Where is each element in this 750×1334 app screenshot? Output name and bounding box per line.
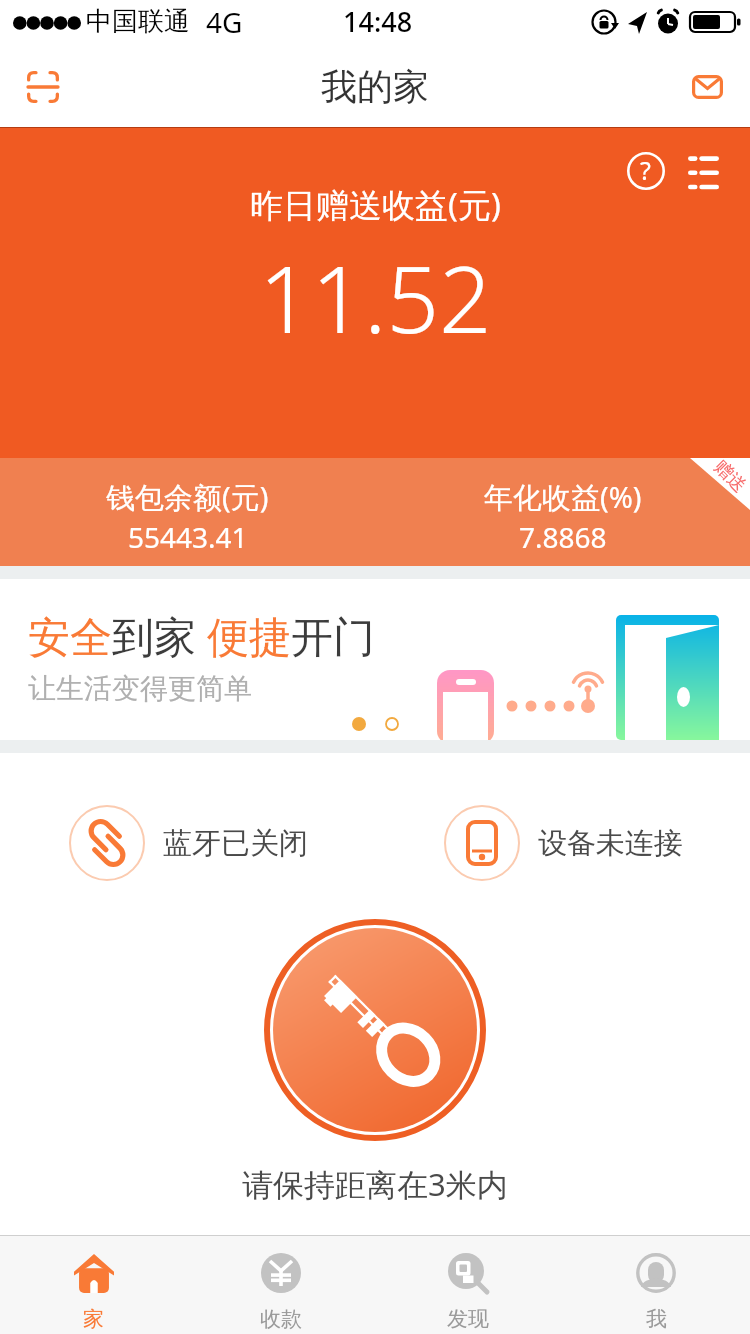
button[interactable]: 设备未连接: [444, 805, 683, 881]
staticText: 家: [83, 1306, 104, 1332]
staticText: 14:48: [343, 3, 413, 40]
staticText: 55443.41: [128, 518, 248, 556]
staticText: 发现: [447, 1306, 489, 1332]
staticText: 设备未连接: [538, 825, 683, 862]
button[interactable]: Help: [619, 144, 672, 197]
button[interactable]: Unlock door: [264, 919, 486, 1141]
staticText: 7.8868: [519, 518, 607, 556]
staticText: 请保持距离在3米内: [242, 1163, 508, 1205]
button[interactable]: 发现: [374, 1236, 562, 1334]
staticText: 4G: [206, 3, 243, 41]
button[interactable]: Messages: [672, 52, 742, 122]
staticText: 11.52: [259, 235, 492, 360]
button[interactable]: Records: [677, 144, 730, 197]
staticText: 蓝牙已关闭: [163, 825, 308, 862]
button[interactable]: Scan: [8, 52, 78, 122]
staticText: 赠送: [709, 456, 750, 497]
staticText: 昨日赠送收益(元): [250, 182, 501, 227]
staticText: 中国联通: [86, 5, 190, 38]
staticText: 钱包余额(元): [106, 477, 269, 517]
staticText: 安全到家 便捷开门: [28, 607, 375, 664]
button[interactable]: 收款: [187, 1236, 374, 1334]
button[interactable]: 我: [562, 1236, 750, 1334]
button[interactable]: 蓝牙已关闭: [69, 805, 308, 881]
staticText: 我的家: [321, 64, 429, 109]
button[interactable]: 安全到家 便捷开门: [0, 579, 750, 740]
staticText: 年化收益(%): [484, 477, 642, 517]
button[interactable]: 家: [0, 1236, 187, 1334]
staticText: ?: [640, 153, 651, 187]
staticText: 收款: [260, 1306, 302, 1332]
staticText: 我: [646, 1306, 667, 1332]
staticText: 让生活变得更简单: [28, 671, 252, 706]
